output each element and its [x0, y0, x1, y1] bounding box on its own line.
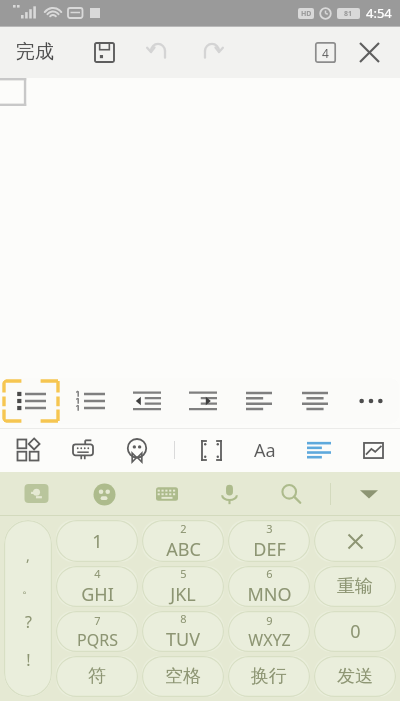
button[interactable]: Delete	[314, 520, 396, 562]
button[interactable]: Apps	[0, 428, 55, 472]
staticText: 重输	[337, 575, 373, 598]
button[interactable]: 4	[56, 566, 138, 607]
staticText: HD	[301, 9, 312, 19]
staticText: TUV	[166, 627, 200, 652]
staticText: ,	[26, 546, 30, 565]
button[interactable]: Input method	[0, 472, 73, 516]
staticText: 发送	[337, 665, 373, 688]
staticText: 5	[180, 566, 187, 581]
staticText: 空格	[165, 665, 201, 688]
staticText: 4	[94, 566, 101, 581]
staticText: 符	[88, 665, 106, 688]
button[interactable]: Select area	[184, 428, 238, 472]
button[interactable]: Pages 4	[304, 31, 346, 73]
button[interactable]: Numbered list	[61, 378, 118, 424]
staticText: Aa	[254, 438, 276, 463]
button[interactable]: 1	[56, 520, 138, 562]
staticText: 1	[92, 529, 103, 554]
button[interactable]: More	[338, 472, 400, 516]
staticText: GHI	[81, 582, 114, 607]
button[interactable]: Voice input	[198, 472, 260, 516]
staticText: 4:54	[366, 4, 392, 22]
button[interactable]: 发送	[314, 656, 396, 697]
staticText: 换行	[251, 665, 287, 688]
staticText: 9	[266, 613, 273, 628]
button[interactable]: Emoji	[73, 472, 136, 516]
staticText: 2	[180, 521, 187, 536]
button[interactable]: Save	[82, 30, 126, 74]
button[interactable]: 0	[314, 611, 396, 652]
staticText: ABC	[166, 537, 201, 562]
button[interactable]: 8	[142, 611, 224, 652]
button[interactable]: Increase indent	[175, 378, 231, 424]
button[interactable]: Stickers	[110, 428, 164, 472]
staticText: 3	[266, 521, 273, 536]
button[interactable]: 2	[142, 520, 224, 562]
button[interactable]: Keyboard layout	[136, 472, 198, 516]
button[interactable]: 完成	[8, 32, 62, 72]
staticText: !	[26, 649, 31, 671]
button[interactable]: 6	[228, 566, 310, 607]
staticText: 0	[350, 619, 361, 644]
button[interactable]: 3	[228, 520, 310, 562]
button[interactable]: Punctuation	[4, 520, 52, 697]
button[interactable]: More options	[343, 378, 399, 424]
staticText: WXYZ	[248, 629, 291, 651]
button[interactable]: Handwriting	[55, 428, 110, 472]
button[interactable]: Close	[348, 31, 390, 73]
staticText: JKL	[170, 582, 196, 607]
button[interactable]: 7	[56, 611, 138, 652]
button[interactable]: Redo	[190, 30, 234, 74]
button[interactable]: Bulleted list	[1, 378, 61, 424]
staticText: 6	[266, 566, 273, 581]
staticText: ?	[25, 611, 32, 633]
button[interactable]: Font	[238, 428, 292, 472]
button[interactable]: Align center	[287, 378, 343, 424]
button[interactable]: 5	[142, 566, 224, 607]
staticText: 。	[22, 581, 34, 596]
button[interactable]: Search	[260, 472, 322, 516]
button[interactable]: 空格	[142, 656, 224, 697]
staticText: PQRS	[77, 629, 118, 651]
button[interactable]: Paragraph	[292, 428, 346, 472]
button[interactable]: 符	[56, 656, 138, 697]
staticText: 4	[322, 45, 329, 61]
staticText: MNO	[247, 582, 292, 607]
staticText: 81	[344, 9, 353, 19]
button[interactable]: Insert image	[346, 428, 400, 472]
button[interactable]: 9	[228, 611, 310, 652]
button[interactable]: 重输	[314, 566, 396, 607]
staticText: DEF	[253, 537, 286, 562]
button[interactable]: Align left	[231, 378, 287, 424]
button[interactable]: Undo	[136, 30, 180, 74]
button[interactable]: Decrease indent	[118, 378, 175, 424]
staticText: 7	[94, 613, 101, 628]
staticText: 8	[180, 611, 187, 626]
button[interactable]: 换行	[228, 656, 310, 697]
staticText: 完成	[16, 40, 54, 64]
